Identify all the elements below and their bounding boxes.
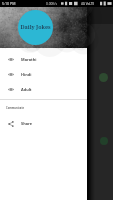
staticText: 4G VoLTE: [81, 2, 95, 6]
button[interactable]: New joke: [99, 73, 108, 82]
staticText: Daily Jokes: [20, 23, 51, 30]
staticText: Marathi: [21, 57, 37, 62]
staticText: Communicate: [6, 106, 25, 110]
staticText: Hindi: [21, 72, 32, 77]
staticText: 0.00K/s: [46, 2, 58, 6]
staticText: Adult: [21, 87, 32, 92]
button[interactable]: Marathi: [0, 52, 87, 67]
staticText: Share: [21, 121, 32, 126]
button[interactable]: Share joke: [100, 137, 108, 145]
button[interactable]: Hindi: [0, 67, 87, 82]
button[interactable]: Adult: [0, 82, 87, 97]
button[interactable]: Share: [0, 116, 87, 131]
staticText: 5:10 PM: [2, 1, 16, 6]
